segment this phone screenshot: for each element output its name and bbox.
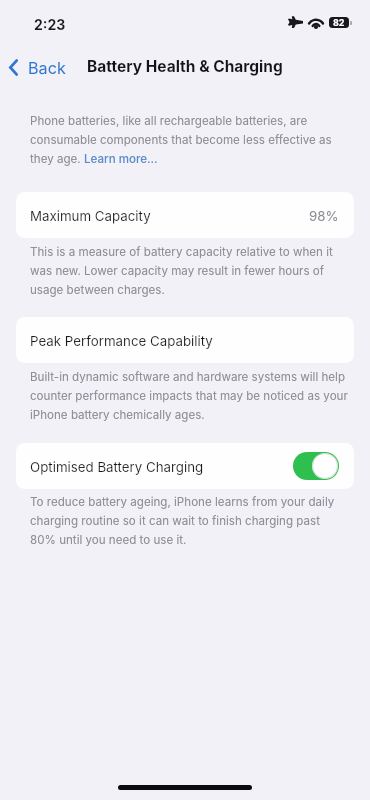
button[interactable]: Back [0, 54, 74, 82]
staticText: Phone batteries, like all rechargeable b… [30, 114, 344, 167]
staticText: Optimised Battery Charging [30, 459, 204, 475]
staticText: Battery Health & Charging [87, 57, 283, 76]
staticText: 2:23 [34, 16, 66, 33]
staticText: Built-in dynamic software and hardware s… [30, 370, 348, 423]
staticText: 98% [309, 208, 339, 224]
button[interactable]: Optimised Battery Charging toggle [293, 452, 339, 480]
staticText: Maximum Capacity [30, 208, 151, 224]
staticText: Peak Performance Capability [30, 333, 213, 349]
staticText: Back [28, 58, 66, 78]
staticText: To reduce battery ageing, iPhone learns … [30, 495, 348, 548]
button[interactable]: Maximum Capacity [16, 192, 354, 238]
button[interactable]: Peak Performance Capability [16, 317, 354, 363]
staticText: This is a measure of battery capacity re… [30, 245, 348, 298]
staticText: 82 [333, 17, 345, 28]
